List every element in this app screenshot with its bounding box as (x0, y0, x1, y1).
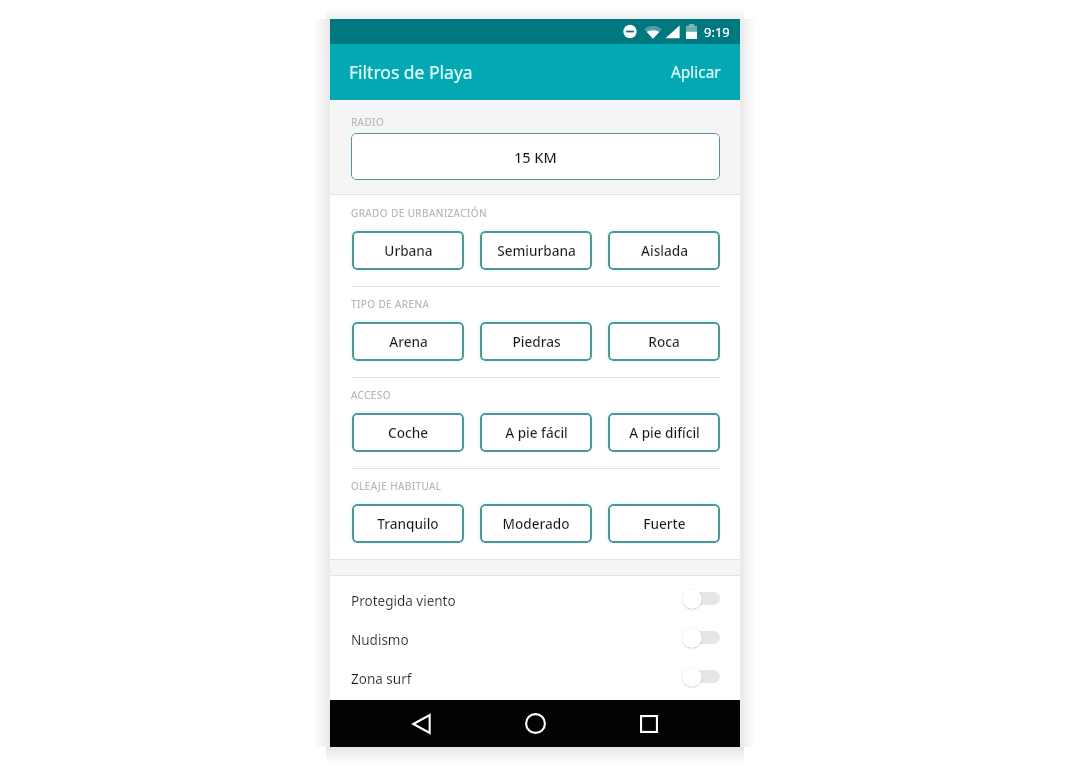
button[interactable]: Fuerte (608, 504, 720, 543)
staticText: Roca (648, 332, 680, 351)
button[interactable]: A pie fácil (480, 413, 592, 452)
staticText: OLEAJE HABITUAL (351, 479, 442, 493)
button[interactable]: Moderado (480, 504, 592, 543)
button[interactable]: Coche (352, 413, 464, 452)
button[interactable]: Protegida viento (330, 581, 740, 620)
staticText: Fuerte (643, 514, 686, 533)
staticText: Aislada (641, 241, 688, 260)
staticText: RADIO (351, 115, 385, 129)
button[interactable]: 15 KM (351, 133, 720, 180)
button[interactable]: Semiurbana (480, 231, 592, 270)
button[interactable]: Nudismo (330, 620, 740, 659)
button[interactable]: Aplicar (651, 46, 740, 99)
button[interactable]: Piedras (480, 322, 592, 361)
staticText: Aplicar (671, 62, 721, 83)
button[interactable]: Back (373, 700, 469, 747)
staticText: TIPO DE ARENA (351, 297, 430, 311)
staticText: ACCESO (351, 388, 391, 402)
staticText: Zona surf (351, 670, 412, 688)
button[interactable]: Zona surf (330, 659, 740, 698)
button[interactable]: Arena (352, 322, 464, 361)
staticText: GRADO DE URBANIZACIÓN (351, 206, 487, 220)
staticText: Urbana (384, 241, 433, 260)
button[interactable]: A pie difícil (608, 413, 720, 452)
button[interactable]: Aislada (608, 231, 720, 270)
staticText: Piedras (512, 332, 561, 351)
staticText: A pie difícil (629, 423, 700, 442)
staticText: Moderado (502, 514, 570, 533)
button[interactable]: Home (487, 700, 583, 747)
staticText: Arena (389, 332, 428, 351)
button[interactable]: Recents (601, 700, 697, 747)
button[interactable]: Roca (608, 322, 720, 361)
staticText: Coche (388, 423, 428, 442)
staticText: Protegida viento (351, 592, 456, 610)
staticText: A pie fácil (505, 423, 568, 442)
button[interactable]: Urbana (352, 231, 464, 270)
staticText: Nudismo (351, 631, 409, 649)
staticText: Filtros de Playa (349, 60, 473, 84)
staticText: 15 KM (514, 147, 557, 167)
staticText: 9:19 (704, 23, 730, 41)
staticText: Semiurbana (497, 241, 576, 260)
staticText: Tranquilo (377, 514, 439, 533)
button[interactable]: Tranquilo (352, 504, 464, 543)
